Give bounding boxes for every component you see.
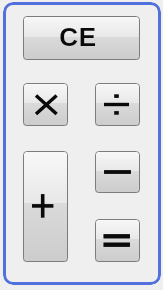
button[interactable]: Minus <box>95 151 140 193</box>
staticText: CE <box>59 22 97 51</box>
button[interactable]: Plus <box>23 151 68 262</box>
button[interactable]: Equals <box>95 219 140 262</box>
button[interactable]: CE <box>23 16 140 60</box>
button[interactable]: Divide <box>95 83 140 126</box>
button[interactable]: Multiply <box>23 83 68 126</box>
